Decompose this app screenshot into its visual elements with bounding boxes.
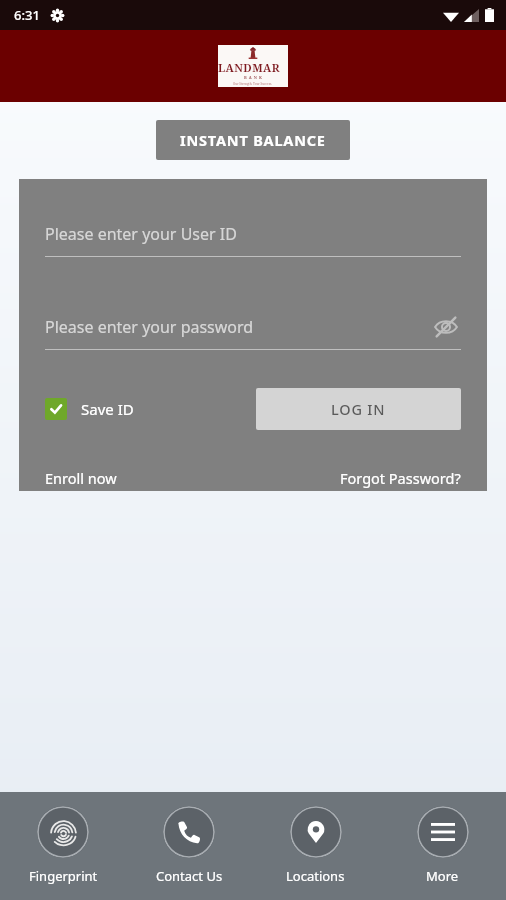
button[interactable]: Locations <box>252 792 379 900</box>
staticText: Fingerprint <box>29 867 98 885</box>
staticText: 6:31 <box>14 6 40 24</box>
button[interactable]: LOG IN <box>256 388 461 430</box>
staticText: More <box>426 867 459 885</box>
button[interactable]: INSTANT BALANCE <box>156 120 350 160</box>
button[interactable]: More <box>379 792 506 900</box>
staticText: Enroll now <box>45 468 117 488</box>
staticText: LOG IN <box>331 399 386 419</box>
button[interactable]: Save ID <box>45 398 134 420</box>
staticText: Please enter your password <box>45 316 254 338</box>
button[interactable]: Fingerprint <box>0 792 126 900</box>
staticText: Please enter your User ID <box>45 223 237 245</box>
staticText: LANDMARK <box>218 60 288 75</box>
staticText: Our Strength. Your Success. <box>233 82 273 86</box>
button[interactable]: Landmark Bank logo <box>218 45 288 87</box>
button[interactable]: Contact Us <box>126 792 252 900</box>
button[interactable]: Enroll now <box>45 468 117 488</box>
staticText: INSTANT BALANCE <box>180 130 326 150</box>
staticText: Locations <box>286 867 345 885</box>
staticText: Contact Us <box>156 867 223 885</box>
button[interactable]: Show password <box>431 312 461 342</box>
staticText: B A N K <box>244 75 263 80</box>
staticText: Save ID <box>81 399 134 419</box>
button[interactable]: Forgot Password? <box>340 468 461 488</box>
button[interactable]: Please enter your User ID <box>45 223 461 257</box>
staticText: Forgot Password? <box>340 468 461 488</box>
button[interactable]: Please enter your password <box>45 316 461 350</box>
